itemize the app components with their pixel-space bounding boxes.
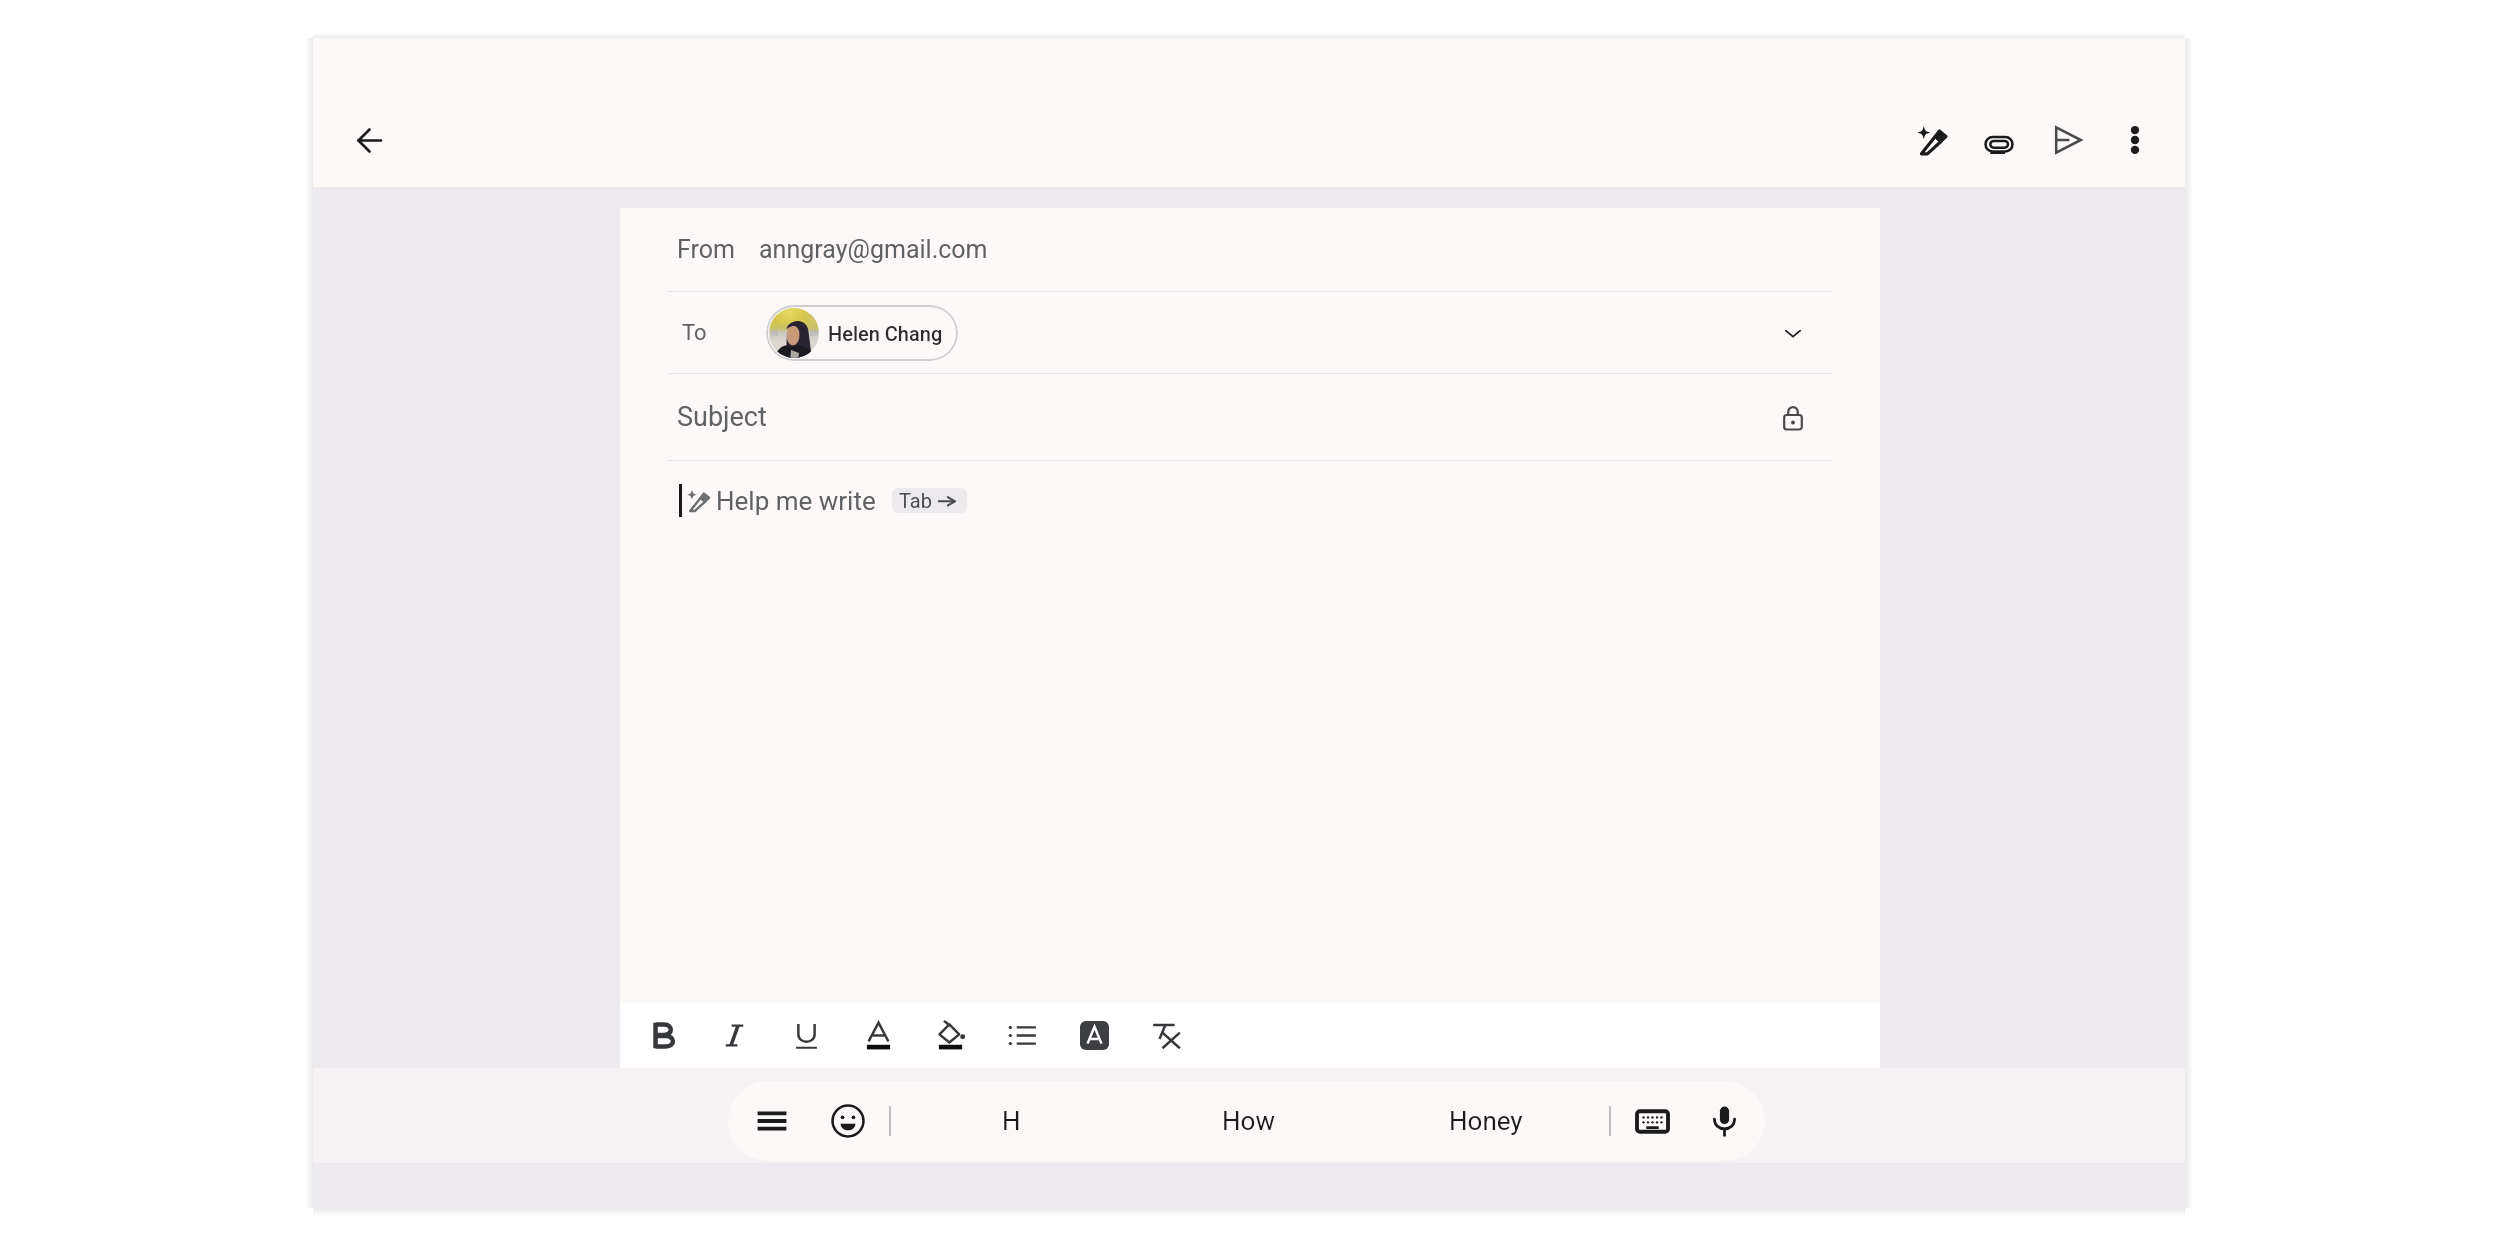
- staticText: To: [682, 320, 707, 346]
- button[interactable]: Highlight colour: [914, 1003, 986, 1068]
- button[interactable]: Helen Chang: [766, 305, 958, 361]
- button[interactable]: Switch keyboard: [1621, 1090, 1683, 1152]
- button[interactable]: Tab: [892, 488, 967, 513]
- staticText: anngray@gmail.com: [759, 235, 988, 264]
- button[interactable]: Bulleted list: [986, 1003, 1058, 1068]
- staticText: Subject: [677, 401, 767, 433]
- button[interactable]: More options: [2101, 106, 2169, 174]
- button[interactable]: Italic: [698, 1003, 770, 1068]
- button[interactable]: Emoji: [817, 1090, 879, 1152]
- button[interactable]: Clear formatting: [1130, 1003, 1202, 1068]
- button[interactable]: Bold: [626, 1003, 698, 1068]
- button[interactable]: Back: [325, 96, 413, 184]
- button[interactable]: Keyboard menu: [741, 1090, 803, 1152]
- button[interactable]: Expand recipient fields: [1761, 301, 1825, 365]
- staticText: Tab: [899, 489, 932, 512]
- button[interactable]: Help me write: [620, 461, 1880, 540]
- button[interactable]: To: [620, 292, 1880, 373]
- staticText: Help me write: [716, 486, 876, 516]
- button[interactable]: Voice input: [1693, 1090, 1755, 1152]
- staticText: Helen Chang: [828, 322, 943, 345]
- button[interactable]: H: [926, 1090, 1096, 1152]
- staticText: Honey: [1449, 1106, 1523, 1136]
- staticText: H: [1002, 1106, 1021, 1136]
- staticText: How: [1222, 1106, 1275, 1136]
- button[interactable]: Help me write: [1897, 106, 1965, 174]
- button[interactable]: Attach file: [1965, 106, 2033, 174]
- button[interactable]: Confidential mode: [1763, 387, 1823, 447]
- button[interactable]: Text colour: [842, 1003, 914, 1068]
- button[interactable]: Background colour: [1058, 1003, 1130, 1068]
- button[interactable]: Underline: [770, 1003, 842, 1068]
- button[interactable]: How: [1163, 1090, 1333, 1152]
- button[interactable]: From: [620, 208, 1880, 291]
- button[interactable]: Subject: [620, 374, 1880, 460]
- button[interactable]: Honey: [1401, 1090, 1571, 1152]
- button[interactable]: Send: [2033, 106, 2101, 174]
- staticText: From: [677, 235, 735, 264]
